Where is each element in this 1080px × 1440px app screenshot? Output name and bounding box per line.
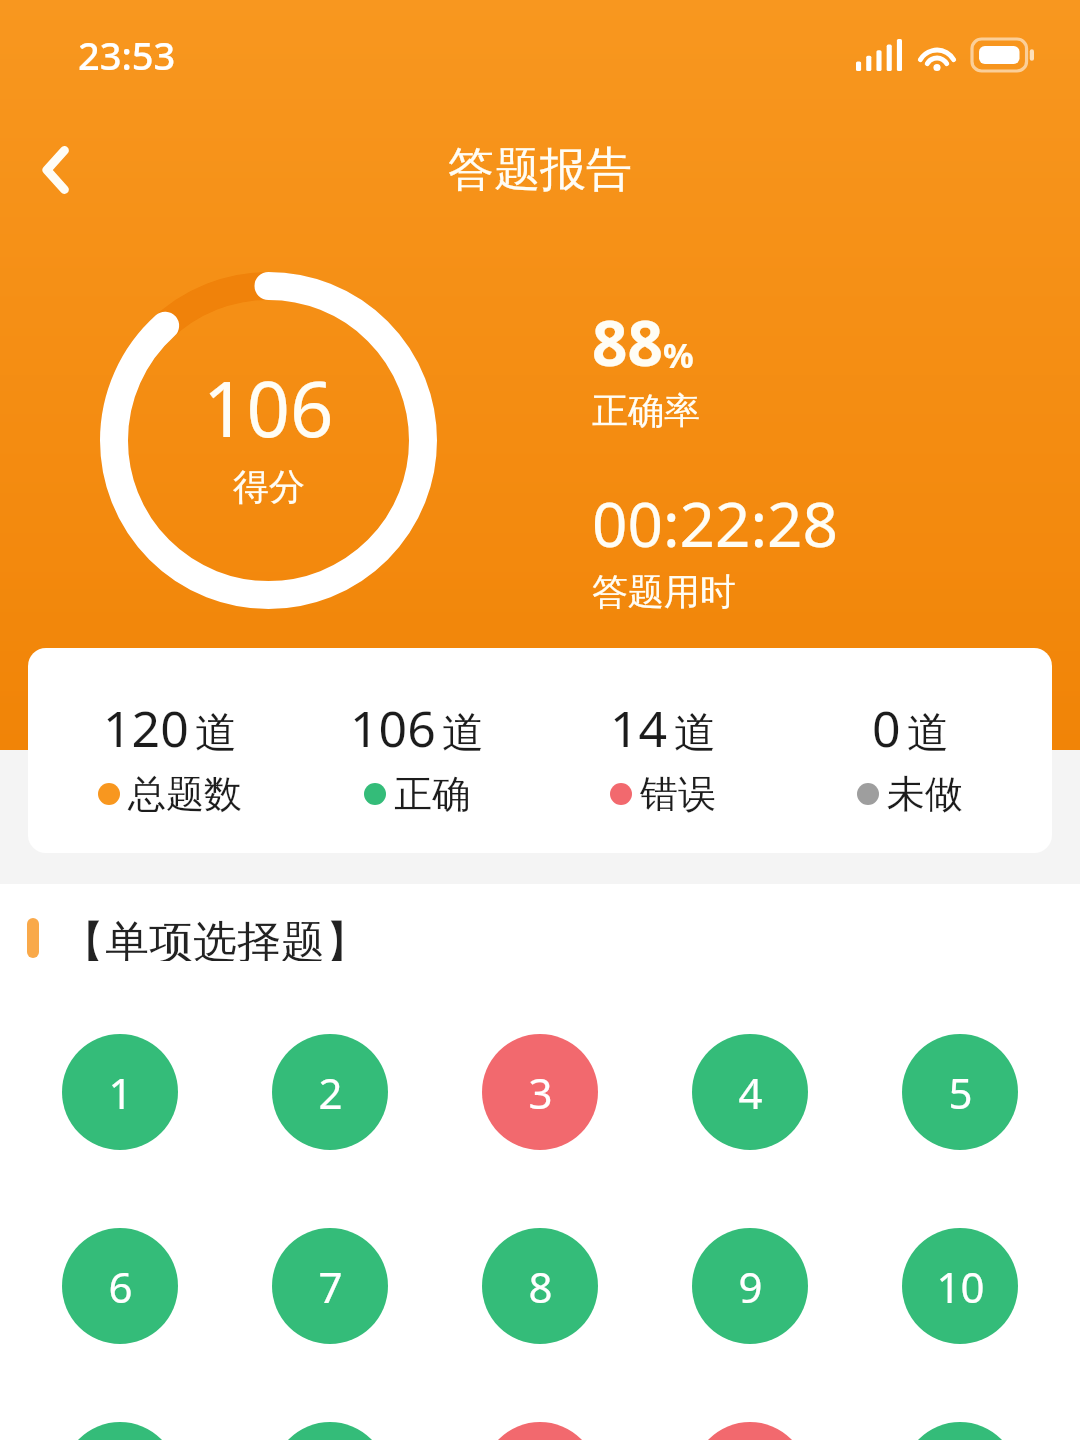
staticText: 5 (948, 1064, 973, 1121)
button[interactable]: 120 (65, 694, 275, 818)
staticText: 总题数 (128, 770, 242, 818)
staticText: 6 (108, 1258, 133, 1315)
button[interactable]: 5 (902, 1034, 1018, 1150)
staticText: 道 (442, 707, 484, 760)
staticText: 106 (203, 356, 334, 460)
button[interactable]: 4 (692, 1034, 808, 1150)
button[interactable]: 14 (558, 694, 768, 818)
staticText: 答题用时 (592, 569, 736, 614)
staticText: 1 (108, 1064, 133, 1121)
staticText: 道 (907, 707, 949, 760)
staticText: 120 (103, 694, 189, 762)
button[interactable]: 1 (62, 1034, 178, 1150)
staticText: 道 (674, 707, 716, 760)
button[interactable]: 2 (272, 1034, 388, 1150)
staticText: 未做 (887, 770, 963, 818)
staticText: 正确率 (592, 388, 700, 433)
staticText: 9 (738, 1258, 763, 1315)
staticText: 答题报告 (448, 141, 632, 199)
button[interactable]: 9 (692, 1228, 808, 1344)
button[interactable]: 15 (902, 1422, 1018, 1440)
button[interactable]: 7 (272, 1228, 388, 1344)
staticText: 7 (318, 1258, 343, 1315)
button[interactable]: 14 (692, 1422, 808, 1440)
staticText: 【单项选择题】 (61, 915, 369, 961)
button[interactable]: 11 (62, 1422, 178, 1440)
staticText: 得分 (233, 464, 305, 509)
staticText: 道 (195, 707, 237, 760)
button[interactable]: Back (0, 115, 110, 225)
staticText: 8 (528, 1258, 553, 1315)
staticText: 4 (738, 1064, 763, 1121)
staticText: % (663, 332, 694, 378)
button[interactable]: 6 (62, 1228, 178, 1344)
staticText: 14 (610, 694, 668, 762)
button[interactable]: 0 (805, 694, 1015, 818)
staticText: 3 (528, 1064, 553, 1121)
staticText: 00:22:28 (592, 481, 839, 565)
staticText: 23:53 (78, 29, 176, 81)
staticText: 正确 (394, 770, 470, 818)
staticText: 88 (592, 300, 663, 384)
staticText: 0 (872, 694, 901, 762)
staticText: 2 (318, 1064, 343, 1121)
button[interactable]: 3 (482, 1034, 598, 1150)
staticText: 错误 (640, 770, 716, 818)
button[interactable]: 13 (482, 1422, 598, 1440)
staticText: 106 (350, 694, 436, 762)
button[interactable]: 10 (902, 1228, 1018, 1344)
button[interactable]: 12 (272, 1422, 388, 1440)
staticText: 10 (936, 1258, 985, 1315)
button[interactable]: 8 (482, 1228, 598, 1344)
button[interactable]: 106 (312, 694, 522, 818)
